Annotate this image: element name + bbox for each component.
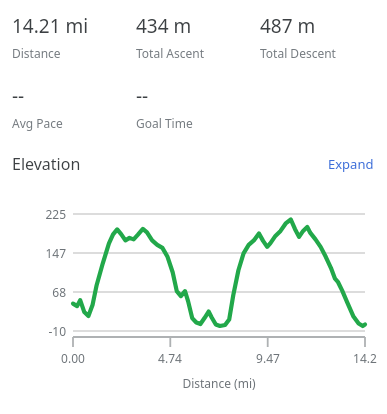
- staticText: 0.00: [49, 350, 97, 366]
- button[interactable]: Expand: [325, 152, 377, 176]
- staticText: Distance: [12, 45, 61, 61]
- staticText: Avg Pace: [12, 115, 63, 131]
- staticText: Expand: [328, 155, 374, 173]
- staticText: Total Ascent: [136, 45, 205, 61]
- staticText: 4.74: [146, 350, 194, 366]
- staticText: -10: [0, 323, 66, 339]
- staticText: 147: [0, 245, 66, 261]
- staticText: 14.21 mi: [12, 13, 89, 39]
- staticText: Total Descent: [260, 45, 336, 61]
- staticText: 14.2: [341, 350, 387, 366]
- staticText: Elevation: [12, 153, 81, 175]
- staticText: 225: [0, 206, 66, 222]
- staticText: 9.47: [244, 350, 292, 366]
- staticText: 68: [0, 284, 66, 300]
- staticText: Distance (mi): [73, 375, 365, 391]
- staticText: 487 m: [260, 13, 316, 39]
- staticText: 434 m: [136, 13, 192, 39]
- staticText: --: [136, 83, 149, 109]
- staticText: --: [12, 83, 25, 109]
- staticText: Goal Time: [136, 115, 193, 131]
